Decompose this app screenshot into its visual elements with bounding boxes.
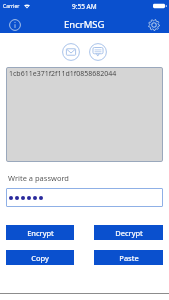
staticText: 9:55 AM <box>72 2 97 11</box>
button[interactable]: Decrypt <box>94 225 163 240</box>
staticText: 1cb611e371f2f11d1f0858682044 <box>9 69 117 79</box>
button[interactable]: Encrypt <box>6 225 74 240</box>
button[interactable]: Settings <box>145 16 162 33</box>
button[interactable]: Copy <box>6 250 74 265</box>
staticText: Write a password <box>8 173 69 183</box>
staticText: Copy <box>31 253 49 263</box>
button[interactable]: Paste <box>94 250 163 265</box>
staticText: Encrypt <box>27 228 54 238</box>
button[interactable]: 1cb611e371f2f11d1f0858682044 <box>6 67 163 162</box>
staticText: Carrier <box>3 3 20 10</box>
button[interactable]: Message <box>89 43 107 61</box>
button[interactable]: Info <box>6 16 23 33</box>
staticText: Decrypt <box>115 228 143 238</box>
button[interactable] <box>6 188 163 207</box>
staticText: EncrMSG <box>64 18 105 31</box>
staticText: Paste <box>119 253 139 263</box>
button[interactable]: Mail <box>62 43 80 61</box>
